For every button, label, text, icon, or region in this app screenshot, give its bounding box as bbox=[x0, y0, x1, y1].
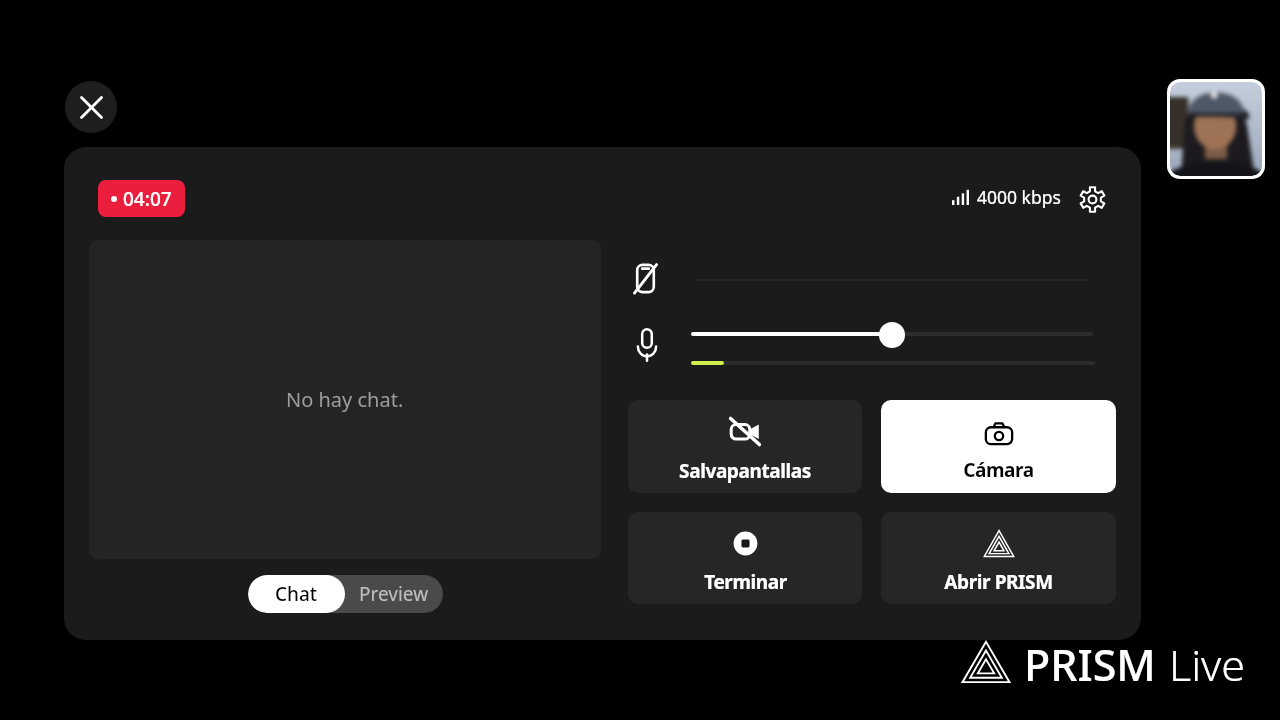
button[interactable]: Camera preview bbox=[1167, 79, 1265, 179]
staticText: Terminar bbox=[704, 569, 787, 595]
button[interactable]: Terminar bbox=[628, 512, 862, 604]
button[interactable]: Microphone bbox=[627, 324, 667, 364]
button[interactable]: Settings bbox=[1072, 179, 1112, 219]
staticText: Cámara bbox=[963, 457, 1034, 483]
button[interactable]: Close bbox=[65, 81, 117, 133]
staticText: 04:07 bbox=[123, 186, 172, 212]
staticText: Live bbox=[1169, 635, 1246, 683]
staticText: Salvapantallas bbox=[679, 458, 811, 484]
button[interactable]: Preview bbox=[345, 575, 443, 613]
staticText: 4000 kbps bbox=[977, 185, 1061, 209]
staticText: Chat bbox=[275, 581, 318, 607]
staticText: PRISM bbox=[1024, 635, 1156, 683]
button[interactable]: Abrir PRISM bbox=[881, 512, 1116, 604]
button[interactable]: Salvapantallas bbox=[628, 400, 862, 493]
staticText: Preview bbox=[359, 581, 429, 607]
button[interactable]: Chat bbox=[248, 575, 345, 613]
staticText: No hay chat. bbox=[286, 386, 404, 413]
staticText: Abrir PRISM bbox=[944, 569, 1053, 595]
button[interactable]: Cámara bbox=[881, 400, 1116, 493]
button[interactable]: Screen off bbox=[625, 258, 665, 298]
button[interactable]: 04:07 bbox=[98, 180, 185, 217]
